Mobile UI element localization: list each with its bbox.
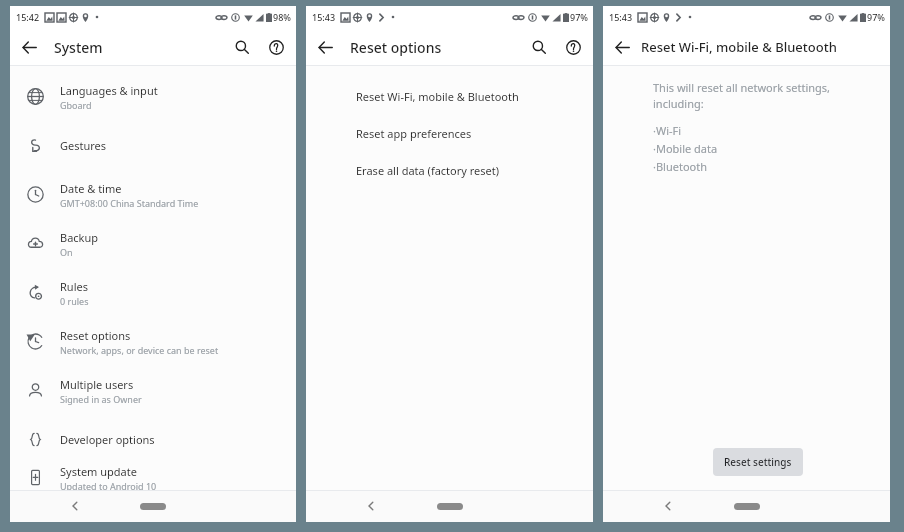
button[interactable]: Home	[728, 497, 766, 516]
button[interactable]: Search	[225, 30, 259, 64]
button[interactable]: Reset options	[10, 317, 296, 366]
staticText: Reset options	[350, 38, 442, 57]
staticText: Network, apps, or device can be reset	[60, 344, 219, 356]
staticText: Languages & input	[60, 83, 158, 98]
staticText: Reset settings	[724, 455, 792, 469]
button[interactable]: Home	[431, 497, 469, 516]
staticText: Gboard	[60, 99, 92, 111]
button[interactable]: Back	[306, 28, 344, 66]
button[interactable]: Back	[62, 493, 88, 519]
staticText: System update	[60, 464, 137, 479]
staticText: ·Bluetooth	[653, 159, 707, 174]
button[interactable]: Search	[522, 30, 556, 64]
button[interactable]: Reset app preferences	[306, 115, 593, 152]
button[interactable]: Back	[358, 493, 384, 519]
button[interactable]: System update	[10, 464, 296, 490]
button[interactable]: Multiple users	[10, 366, 296, 415]
button[interactable]: Back	[10, 28, 48, 66]
staticText: 15:42	[16, 11, 40, 23]
staticText: Reset Wi-Fi, mobile & Bluetooth	[356, 89, 519, 104]
staticText: 0 rules	[60, 295, 89, 307]
button[interactable]: Back	[603, 28, 641, 66]
staticText: Rules	[60, 279, 88, 294]
staticText: 15:43	[312, 11, 336, 23]
button[interactable]: Gestures	[10, 121, 296, 170]
staticText: Developer options	[60, 432, 155, 447]
staticText: Erase all data (factory reset)	[356, 163, 500, 178]
staticText: On	[60, 246, 73, 258]
button[interactable]: Help	[556, 30, 590, 64]
button[interactable]: Developer options	[10, 415, 296, 464]
button[interactable]: Rules	[10, 268, 296, 317]
staticText: System	[54, 38, 103, 57]
staticText: 97%	[570, 11, 588, 23]
staticText: Signed in as Owner	[60, 393, 142, 405]
button[interactable]: Help	[259, 30, 293, 64]
button[interactable]: Backup	[10, 219, 296, 268]
staticText: GMT+08:00 China Standard Time	[60, 197, 199, 209]
staticText: Updated to Android 10	[60, 480, 157, 490]
button[interactable]: Languages & input	[10, 72, 296, 121]
staticText: Reset app preferences	[356, 126, 472, 141]
staticText: This will reset all network settings, in…	[653, 80, 878, 111]
staticText: 97%	[867, 11, 885, 23]
staticText: Reset Wi-Fi, mobile & Bluetooth	[641, 38, 837, 56]
button[interactable]: Reset settings	[713, 448, 803, 476]
button[interactable]: Erase all data (factory reset)	[306, 152, 593, 189]
staticText: 15:43	[609, 11, 633, 23]
button[interactable]: Back	[655, 493, 681, 519]
staticText: 98%	[273, 11, 291, 23]
staticText: ·Wi-Fi	[653, 123, 682, 138]
staticText: Backup	[60, 230, 99, 245]
button[interactable]: Reset Wi-Fi, mobile & Bluetooth	[306, 78, 593, 115]
staticText: Gestures	[60, 138, 107, 153]
staticText: Date & time	[60, 181, 122, 196]
staticText: ·Mobile data	[653, 141, 718, 156]
staticText: Reset options	[60, 328, 131, 343]
button[interactable]: Date & time	[10, 170, 296, 219]
button[interactable]: Home	[134, 497, 172, 516]
staticText: Multiple users	[60, 377, 134, 392]
